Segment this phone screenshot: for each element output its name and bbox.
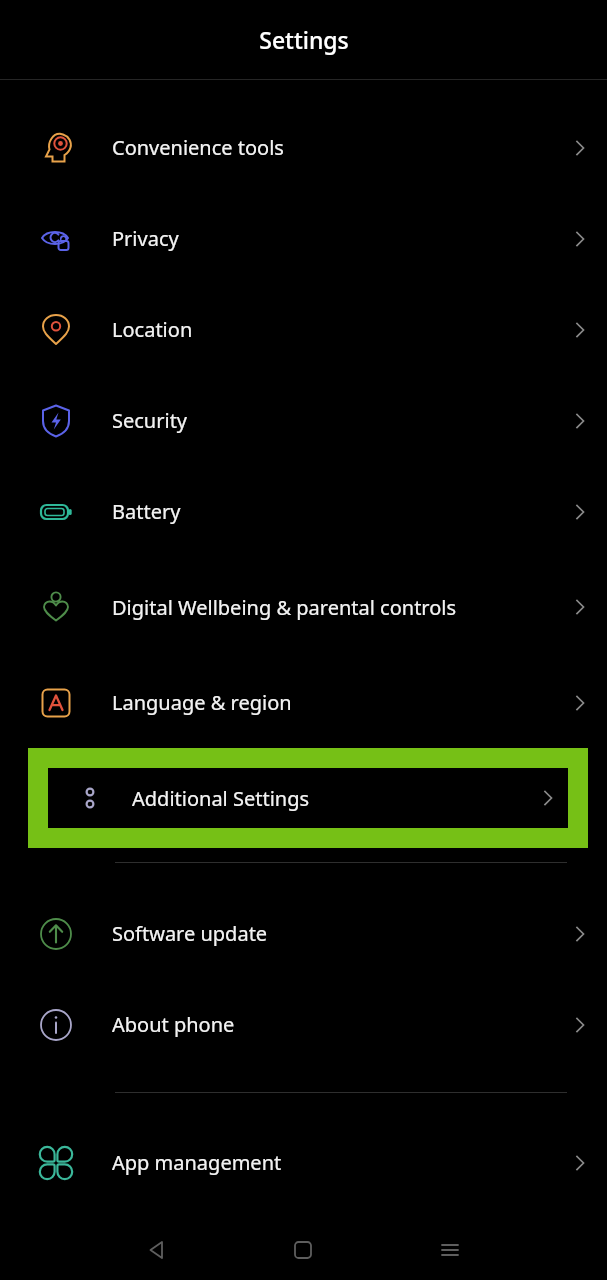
- button[interactable]: Location: [0, 284, 607, 375]
- staticText: Convenience tools: [112, 134, 535, 161]
- button[interactable]: Privacy: [0, 193, 607, 284]
- staticText: Settings: [259, 24, 349, 55]
- staticText: Digital Wellbeing & parental controls: [112, 594, 535, 621]
- staticText: Additional Settings: [132, 785, 528, 812]
- button[interactable]: About phone: [0, 979, 607, 1070]
- staticText: About phone: [112, 1011, 535, 1038]
- button[interactable]: App management: [0, 1117, 607, 1208]
- button[interactable]: Recent apps: [403, 1220, 497, 1280]
- staticText: Security: [112, 407, 535, 434]
- staticText: App management: [112, 1149, 535, 1176]
- button[interactable]: Battery: [0, 466, 607, 557]
- button[interactable]: Language & region: [0, 657, 607, 748]
- staticText: Location: [112, 316, 535, 343]
- button[interactable]: Security: [0, 375, 607, 466]
- button[interactable]: Back: [110, 1220, 204, 1280]
- button[interactable]: Additional Settings: [48, 768, 568, 828]
- button[interactable]: Home: [256, 1220, 350, 1280]
- button[interactable]: Convenience tools: [0, 102, 607, 193]
- button[interactable]: Software update: [0, 888, 607, 979]
- staticText: Privacy: [112, 225, 535, 252]
- button[interactable]: Digital Wellbeing & parental controls: [0, 557, 607, 657]
- staticText: Software update: [112, 920, 535, 947]
- staticText: Language & region: [112, 689, 535, 716]
- staticText: Battery: [112, 498, 535, 525]
